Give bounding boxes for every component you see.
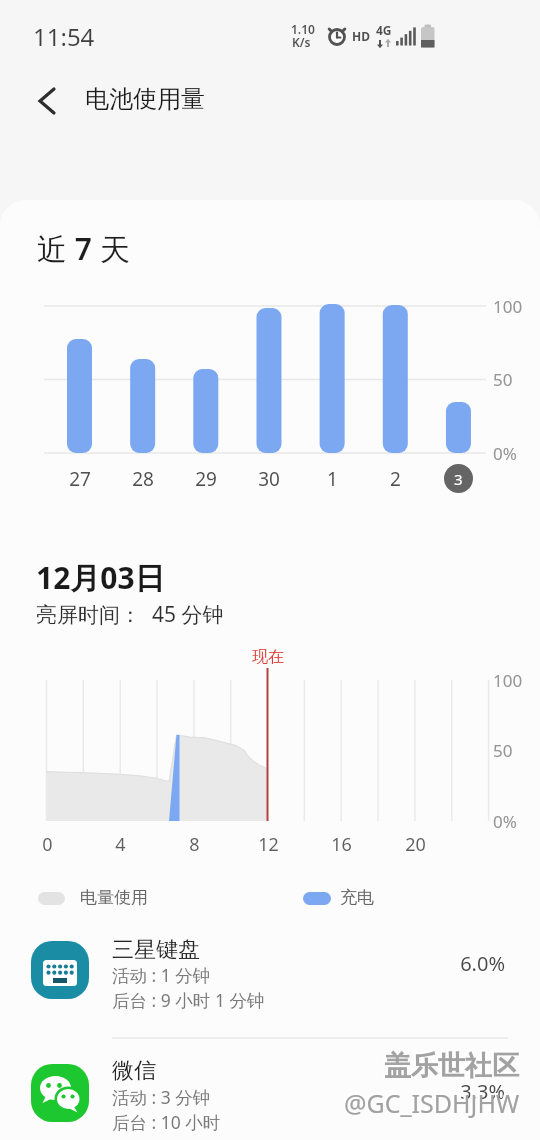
staticText: 活动 : 1 分钟 [112, 963, 211, 987]
staticText: 活动 : 3 分钟 [112, 1085, 211, 1109]
staticText: 20 [405, 832, 426, 857]
staticText: 盖乐世社区 [384, 1049, 519, 1083]
staticText: 50 [493, 368, 513, 391]
staticText: 27 [69, 466, 91, 492]
staticText: 充电 [340, 887, 374, 908]
staticText: 28 [132, 466, 154, 492]
staticText: 后台 : 10 小时 [112, 1110, 221, 1134]
staticText: 亮屏时间： 45 分钟 [36, 600, 224, 629]
staticText: 8 [189, 832, 200, 857]
staticText: 100 [493, 295, 523, 318]
staticText: 0% [493, 442, 517, 465]
staticText: HD [352, 28, 370, 44]
staticText: 12 [258, 832, 279, 857]
button[interactable] [26, 78, 70, 122]
staticText: 2 [390, 466, 401, 492]
staticText: 100 [493, 669, 523, 692]
staticText: 近 7 天 [37, 228, 130, 269]
staticText: @GC_ISDHJHW [342, 1084, 518, 1118]
staticText: @GC_ISDHJHW [344, 1086, 520, 1120]
staticText: 0% [493, 810, 517, 833]
staticText: 16 [331, 832, 352, 857]
staticText: 4G [376, 22, 392, 38]
staticText: 1 [327, 466, 338, 492]
staticText: 电池使用量 [85, 84, 205, 114]
staticText: 后台 : 9 小时 1 分钟 [112, 988, 265, 1012]
staticText: 三星键盘 [112, 936, 200, 964]
staticText: 11:54 [33, 20, 95, 53]
staticText: 微信 [112, 1057, 156, 1085]
button[interactable] [0, 1048, 540, 1140]
staticText: 29 [195, 466, 217, 492]
staticText: 12月03日 [36, 557, 165, 598]
staticText: 3 [454, 469, 463, 489]
staticText: 盖乐世社区 [382, 1047, 517, 1081]
staticText: 30 [258, 466, 280, 492]
button[interactable]: 3 [444, 464, 473, 493]
staticText: 现在 [252, 647, 284, 667]
staticText: 50 [493, 739, 513, 762]
staticText: 6.0% [460, 950, 505, 977]
staticText: 4 [115, 832, 126, 857]
staticText: 3.3% [460, 1078, 505, 1105]
staticText: 1.10 [291, 21, 315, 37]
staticText: 电量使用 [80, 887, 148, 908]
staticText: K/s [292, 34, 311, 50]
staticText: 0 [42, 832, 53, 857]
button[interactable] [0, 930, 540, 1035]
